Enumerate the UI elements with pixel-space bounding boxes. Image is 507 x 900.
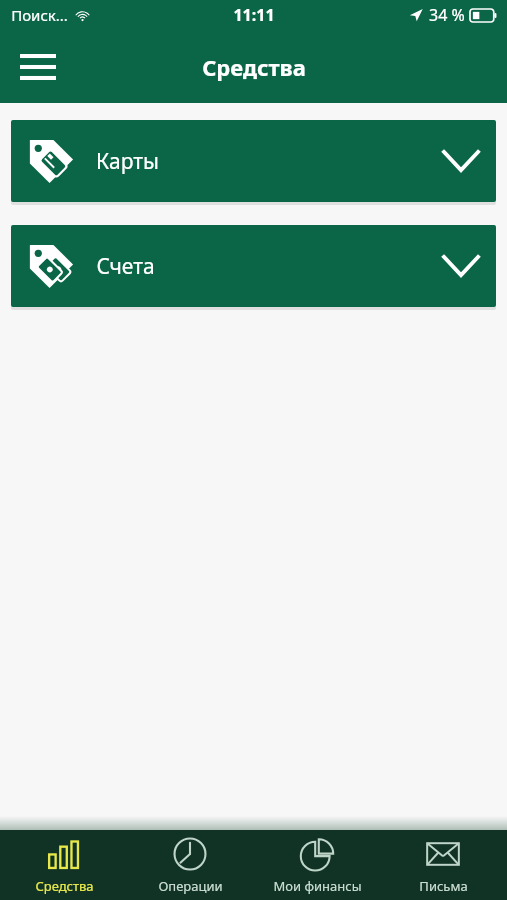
button[interactable]: Письма [380, 836, 506, 895]
staticText: Мои финансы [273, 877, 362, 895]
button[interactable]: Мои финансы [254, 836, 380, 895]
staticText: Письма [419, 877, 468, 895]
button[interactable]: Menu [14, 43, 62, 91]
staticText: Операции [158, 877, 223, 895]
button[interactable]: Карты [11, 120, 496, 202]
staticText: Поиск... [11, 5, 68, 25]
button[interactable]: Операции [127, 836, 253, 895]
button[interactable]: Средства [1, 836, 127, 895]
button[interactable]: Счета [11, 225, 496, 307]
staticText: Карты [96, 147, 159, 176]
staticText: Счета [96, 252, 155, 281]
staticText: Средства [202, 52, 306, 82]
staticText: Средства [35, 877, 94, 895]
staticText: 34 % [429, 4, 465, 26]
staticText: 11:11 [233, 4, 275, 26]
